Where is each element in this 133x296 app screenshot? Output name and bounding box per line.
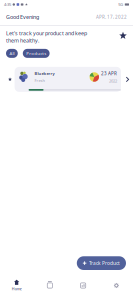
button[interactable]: Products bbox=[23, 49, 50, 58]
button[interactable]: Blueberry bbox=[15, 67, 121, 92]
button[interactable]: Home bbox=[0, 280, 33, 291]
staticText: Fresh bbox=[35, 78, 45, 83]
staticText: Home bbox=[12, 286, 22, 291]
staticText: Let's track your product and keep them h… bbox=[6, 30, 87, 44]
staticText: 23 APR bbox=[101, 70, 117, 77]
staticText: All bbox=[9, 50, 14, 56]
staticText: Products bbox=[26, 50, 46, 56]
button[interactable]: Favorites bbox=[117, 30, 129, 42]
button[interactable]: Statistics bbox=[66, 283, 100, 288]
button[interactable]: Track Product bbox=[77, 256, 126, 270]
button[interactable]: All bbox=[6, 49, 18, 58]
staticText: 2022 bbox=[109, 78, 117, 84]
staticText: Track Product bbox=[89, 260, 120, 266]
staticText: Good Evening bbox=[6, 13, 39, 21]
staticText: 5G bbox=[118, 2, 123, 7]
button[interactable]: Calendar bbox=[33, 283, 66, 288]
staticText: APR. 17, 2022 bbox=[96, 14, 127, 20]
button[interactable]: Settings bbox=[100, 283, 133, 288]
staticText: 4:35 bbox=[4, 2, 11, 7]
staticText: Blueberry bbox=[35, 71, 55, 76]
